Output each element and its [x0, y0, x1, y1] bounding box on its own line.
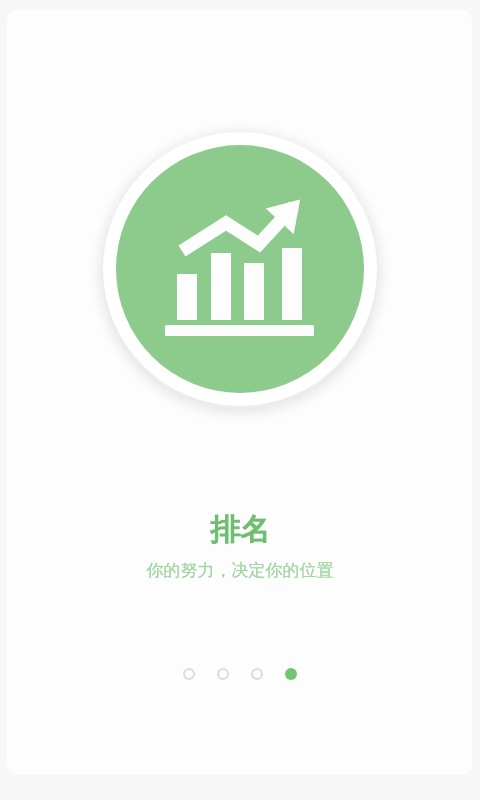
button[interactable]: Page 1 [179, 664, 199, 684]
staticText: 排名 [210, 511, 270, 549]
other: Ranking chart illustration [102, 131, 378, 407]
button[interactable]: Page 4 [281, 664, 301, 684]
button[interactable]: Page 2 [213, 664, 233, 684]
staticText: 你的努力，决定你的位置 [0, 560, 480, 581]
button[interactable]: Page 3 [247, 664, 267, 684]
